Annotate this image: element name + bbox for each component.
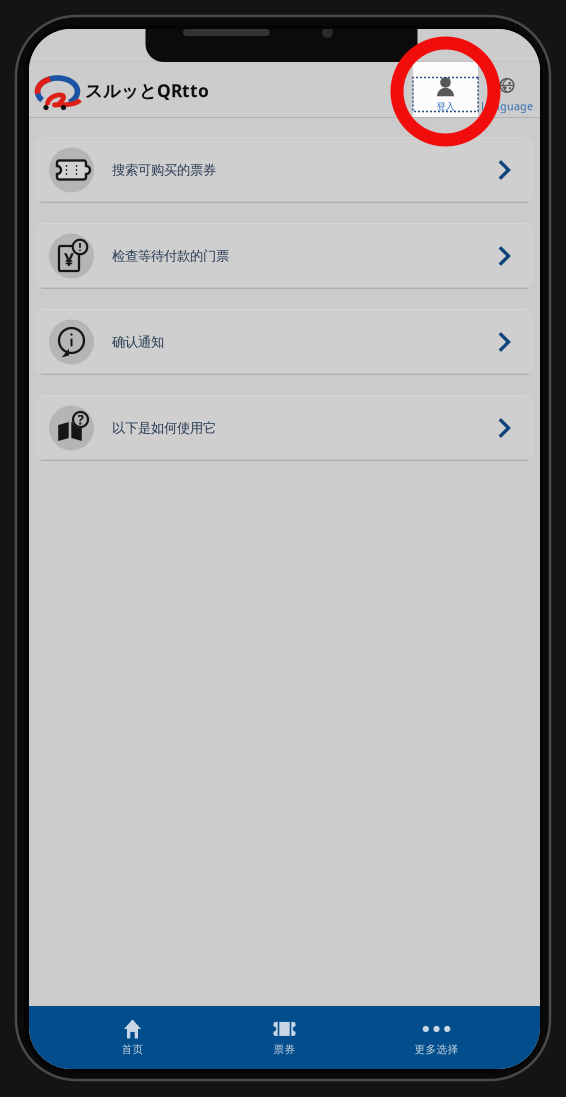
staticText: ¥ xyxy=(64,248,74,271)
staticText: 更多选择 xyxy=(414,1043,458,1056)
staticText: 首页 xyxy=(121,1043,143,1056)
button[interactable]: Language xyxy=(478,61,536,118)
staticText: 确认通知 xyxy=(112,334,164,350)
button[interactable]: ¥ xyxy=(35,223,534,289)
button[interactable]: 首页 xyxy=(56,1006,208,1069)
button[interactable]: ? xyxy=(35,395,534,461)
button[interactable]: 登入 xyxy=(413,61,478,118)
staticText: ? xyxy=(77,411,83,428)
button[interactable]: 更多选择 xyxy=(360,1006,512,1069)
staticText: スルッとQRtto xyxy=(85,79,209,102)
staticText: 检查等待付款的门票 xyxy=(112,248,229,264)
staticText: 票券 xyxy=(273,1043,295,1056)
staticText: 搜索可购买的票券 xyxy=(112,162,216,178)
staticText: 以下是如何使用它 xyxy=(112,420,216,436)
staticText: Language xyxy=(481,99,533,113)
button[interactable]: 票券 xyxy=(208,1006,360,1069)
staticText: 登入 xyxy=(436,101,454,112)
button[interactable]: 搜索可购买的票券 xyxy=(35,137,534,203)
button[interactable]: 确认通知 xyxy=(35,309,534,375)
